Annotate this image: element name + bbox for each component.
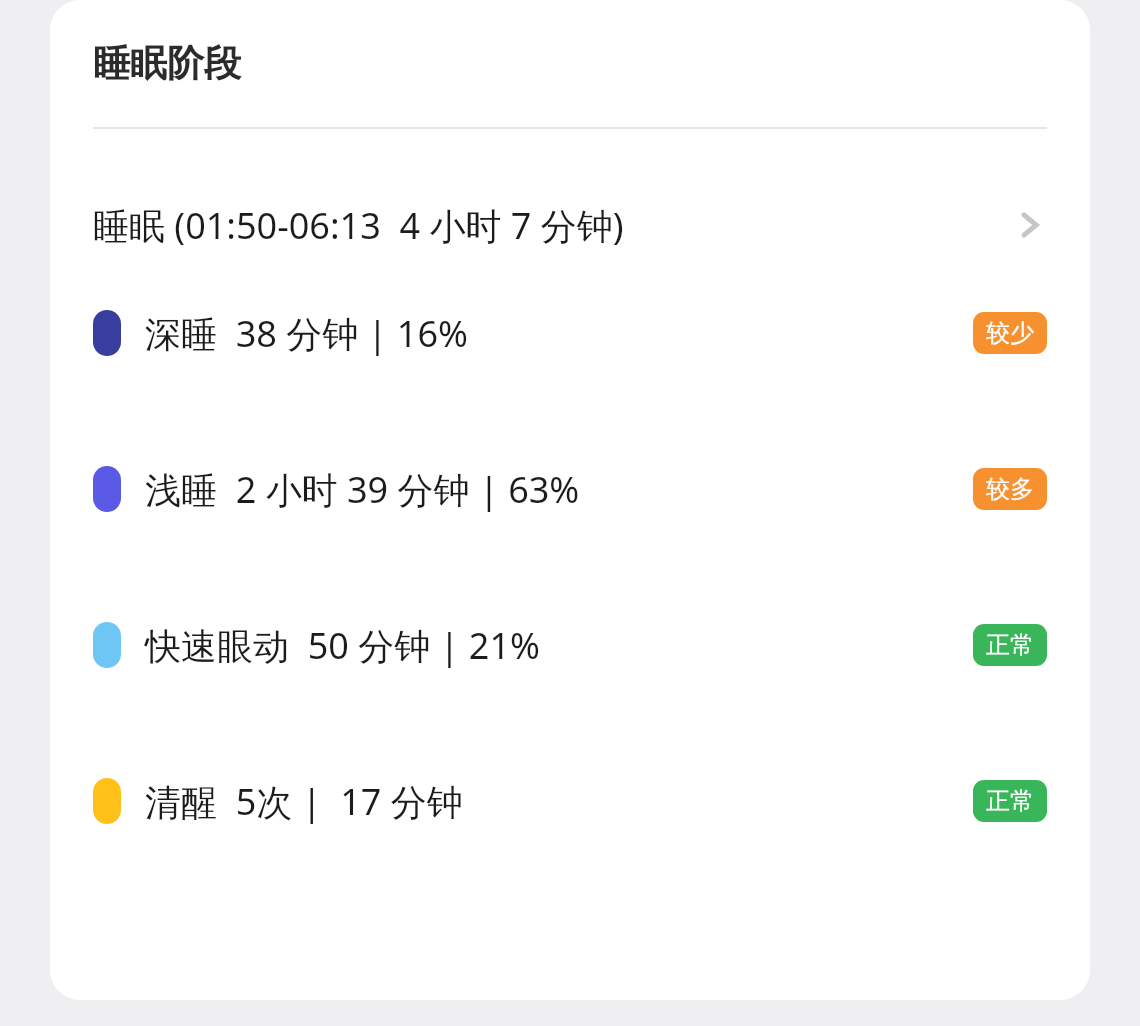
button[interactable]: 清醒 5次 | 17 分钟 bbox=[50, 771, 1090, 831]
button[interactable]: 浅睡 2 小时 39 分钟 | 63% bbox=[50, 459, 1090, 519]
button[interactable]: 深睡 38 分钟 | 16% bbox=[50, 303, 1090, 363]
staticText: 较多 bbox=[986, 474, 1034, 504]
staticText: 快速眼动 50 分钟 | 21% bbox=[145, 621, 973, 670]
staticText: 较少 bbox=[986, 318, 1034, 348]
staticText: 正常 bbox=[986, 630, 1034, 660]
staticText: 睡眠 (01:50-06:13 4 小时 7 分钟) bbox=[93, 201, 1011, 250]
staticText: 正常 bbox=[986, 786, 1034, 816]
staticText: 睡眠阶段 bbox=[93, 40, 241, 87]
other: 查看睡眠详情 bbox=[1011, 207, 1047, 243]
staticText: 深睡 38 分钟 | 16% bbox=[145, 309, 973, 358]
staticText: 浅睡 2 小时 39 分钟 | 63% bbox=[145, 465, 973, 514]
staticText: 清醒 5次 | 17 分钟 bbox=[145, 777, 973, 826]
button[interactable]: 睡眠 (01:50-06:13 4 小时 7 分钟) bbox=[50, 187, 1090, 263]
button[interactable]: 快速眼动 50 分钟 | 21% bbox=[50, 615, 1090, 675]
